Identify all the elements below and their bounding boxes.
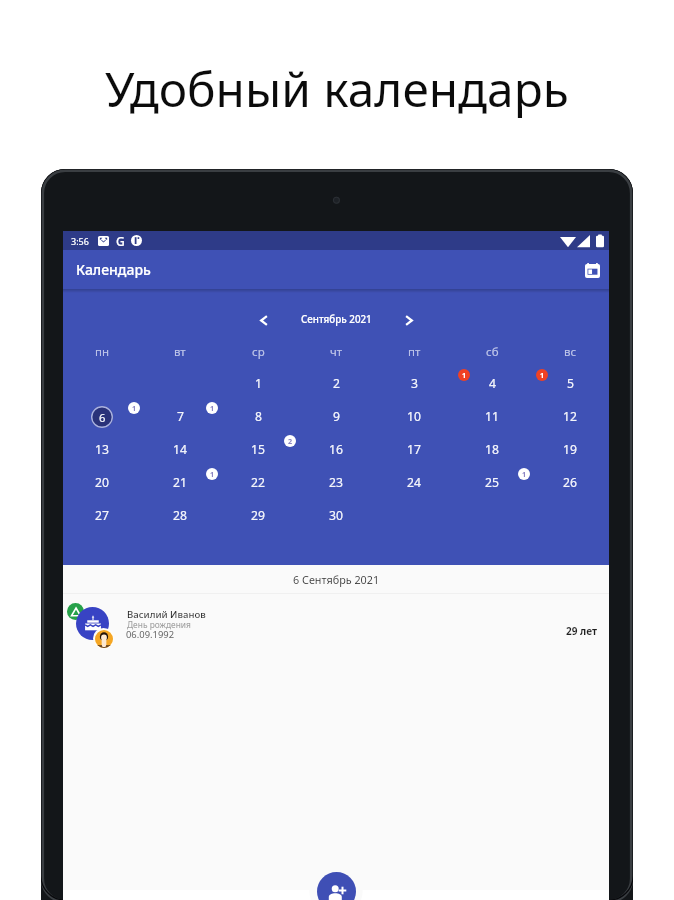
button[interactable]: 13 bbox=[63, 433, 141, 466]
staticText: 11 bbox=[485, 408, 499, 425]
button[interactable]: 30 bbox=[297, 499, 375, 532]
button[interactable]: Add contact bbox=[317, 872, 356, 900]
staticText: 24 bbox=[407, 474, 421, 491]
staticText: 16 bbox=[329, 441, 343, 458]
staticText: 18 bbox=[485, 441, 499, 458]
staticText: 27 bbox=[95, 507, 109, 524]
button[interactable]: 17 bbox=[375, 433, 453, 466]
button[interactable]: 4 bbox=[453, 367, 531, 400]
button[interactable]: Previous month bbox=[250, 306, 278, 334]
button[interactable]: 16 bbox=[297, 433, 375, 466]
button[interactable]: 3 bbox=[375, 367, 453, 400]
button[interactable]: 28 bbox=[141, 499, 219, 532]
button[interactable]: 1 bbox=[219, 367, 297, 400]
staticText: День рождения bbox=[127, 619, 191, 630]
button[interactable]: Go to today bbox=[577, 255, 607, 285]
staticText: вс bbox=[564, 344, 577, 360]
button[interactable]: 9 bbox=[297, 400, 375, 433]
staticText: Календарь bbox=[76, 260, 151, 279]
button[interactable]: 25 bbox=[453, 466, 531, 499]
staticText: 2 bbox=[288, 436, 293, 446]
staticText: 1 bbox=[255, 375, 262, 392]
staticText: 20 bbox=[95, 474, 109, 491]
staticText: 26 bbox=[563, 474, 577, 491]
staticText: Василий Иванов bbox=[127, 608, 206, 621]
button[interactable]: 10 bbox=[375, 400, 453, 433]
staticText: 19 bbox=[563, 441, 577, 458]
staticText: 4 bbox=[489, 375, 496, 392]
staticText: 7 bbox=[177, 408, 184, 425]
staticText: 9 bbox=[333, 408, 340, 425]
button[interactable]: 7 bbox=[141, 400, 219, 433]
staticText: 1 bbox=[462, 370, 467, 380]
staticText: 30 bbox=[329, 507, 343, 524]
staticText: 5 bbox=[567, 375, 574, 392]
staticText: 8 bbox=[255, 408, 262, 425]
staticText: 1 bbox=[540, 370, 545, 380]
staticText: 3 bbox=[411, 375, 418, 392]
staticText: 1 bbox=[210, 403, 215, 413]
staticText: 13 bbox=[95, 441, 109, 458]
button[interactable]: 27 bbox=[63, 499, 141, 532]
button[interactable]: 19 bbox=[531, 433, 609, 466]
staticText: 21 bbox=[173, 474, 187, 491]
staticText: 29 bbox=[251, 507, 265, 524]
button[interactable]: Next month bbox=[395, 306, 423, 334]
staticText: Удобный календарь bbox=[105, 56, 569, 121]
button[interactable]: 24 bbox=[375, 466, 453, 499]
button[interactable]: 26 bbox=[531, 466, 609, 499]
staticText: 28 bbox=[173, 507, 187, 524]
staticText: 6 Сентябрь 2021 bbox=[293, 572, 380, 587]
staticText: Сентябрь 2021 bbox=[301, 313, 372, 326]
staticText: 1 bbox=[522, 469, 527, 479]
staticText: ср bbox=[252, 344, 265, 360]
button[interactable]: 12 bbox=[531, 400, 609, 433]
button[interactable]: 18 bbox=[453, 433, 531, 466]
button[interactable]: 21 bbox=[141, 466, 219, 499]
button[interactable]: 23 bbox=[297, 466, 375, 499]
staticText: 29 лет bbox=[566, 624, 598, 638]
button[interactable]: Василий Иванов bbox=[63, 594, 609, 656]
staticText: 3:56 bbox=[71, 235, 89, 247]
staticText: 25 bbox=[485, 474, 499, 491]
staticText: пт bbox=[408, 344, 421, 360]
button[interactable]: 14 bbox=[141, 433, 219, 466]
staticText: 1 bbox=[132, 403, 137, 413]
staticText: сб bbox=[486, 344, 499, 360]
button[interactable]: 5 bbox=[531, 367, 609, 400]
button[interactable]: 2 bbox=[297, 367, 375, 400]
staticText: 22 bbox=[251, 474, 265, 491]
button[interactable]: 8 bbox=[219, 400, 297, 433]
staticText: G bbox=[116, 233, 125, 249]
staticText: 17 bbox=[407, 441, 421, 458]
staticText: 06.09.1992 bbox=[126, 628, 175, 641]
staticText: пн bbox=[95, 344, 110, 360]
button[interactable]: 29 bbox=[219, 499, 297, 532]
staticText: 14 bbox=[173, 441, 187, 458]
staticText: 15 bbox=[251, 441, 265, 458]
button[interactable]: 22 bbox=[219, 466, 297, 499]
staticText: вт bbox=[174, 344, 186, 360]
button[interactable]: 11 bbox=[453, 400, 531, 433]
staticText: 10 bbox=[407, 408, 421, 425]
staticText: 2 bbox=[333, 375, 340, 392]
button[interactable]: 20 bbox=[63, 466, 141, 499]
staticText: 23 bbox=[329, 474, 343, 491]
staticText: чт bbox=[330, 344, 343, 360]
staticText: 1 bbox=[210, 469, 215, 479]
button[interactable]: 15 bbox=[219, 433, 297, 466]
button[interactable]: 6 bbox=[63, 400, 141, 433]
staticText: 6 bbox=[99, 410, 106, 425]
staticText: 12 bbox=[563, 408, 577, 425]
